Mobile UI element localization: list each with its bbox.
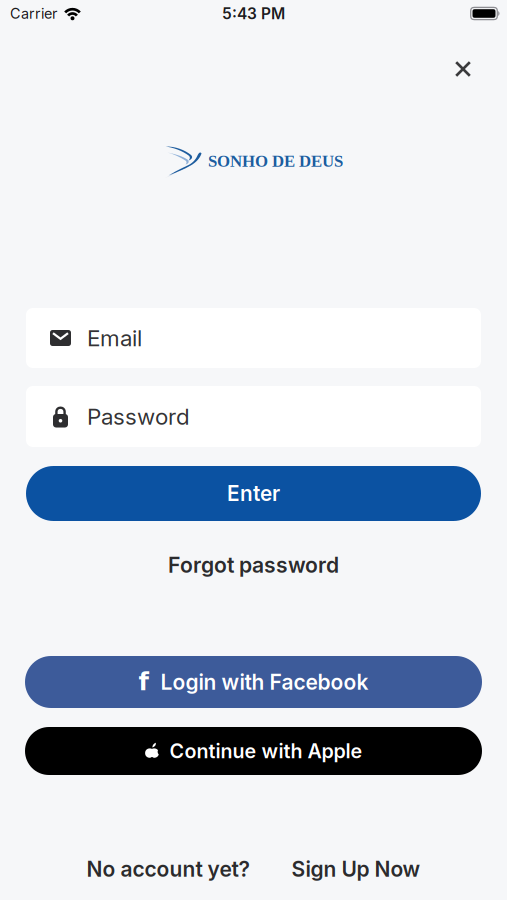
staticText: Carrier: [10, 5, 57, 22]
staticText: SONHO DE DEUS: [208, 152, 343, 170]
button[interactable]: Continue with Apple: [25, 727, 482, 775]
button[interactable]: Enter: [26, 466, 481, 521]
button[interactable]: f: [25, 656, 482, 708]
staticText: Sign Up Now: [291, 856, 420, 882]
staticText: f: [138, 668, 148, 696]
staticText: Password: [87, 403, 190, 430]
button[interactable]: Close: [455, 61, 471, 77]
staticText: Continue with Apple: [169, 739, 362, 763]
staticText: Login with Facebook: [160, 669, 368, 695]
button[interactable]: Forgot password: [168, 551, 339, 579]
button[interactable]: Sign Up Now: [291, 856, 420, 882]
button[interactable]: Email: [26, 308, 481, 368]
staticText: No account yet?: [86, 856, 249, 882]
staticText: Email: [87, 324, 142, 352]
staticText: Enter: [227, 481, 280, 506]
button[interactable]: Password: [26, 386, 481, 447]
staticText: 5:43 PM: [222, 4, 285, 23]
staticText: Forgot password: [168, 552, 339, 578]
